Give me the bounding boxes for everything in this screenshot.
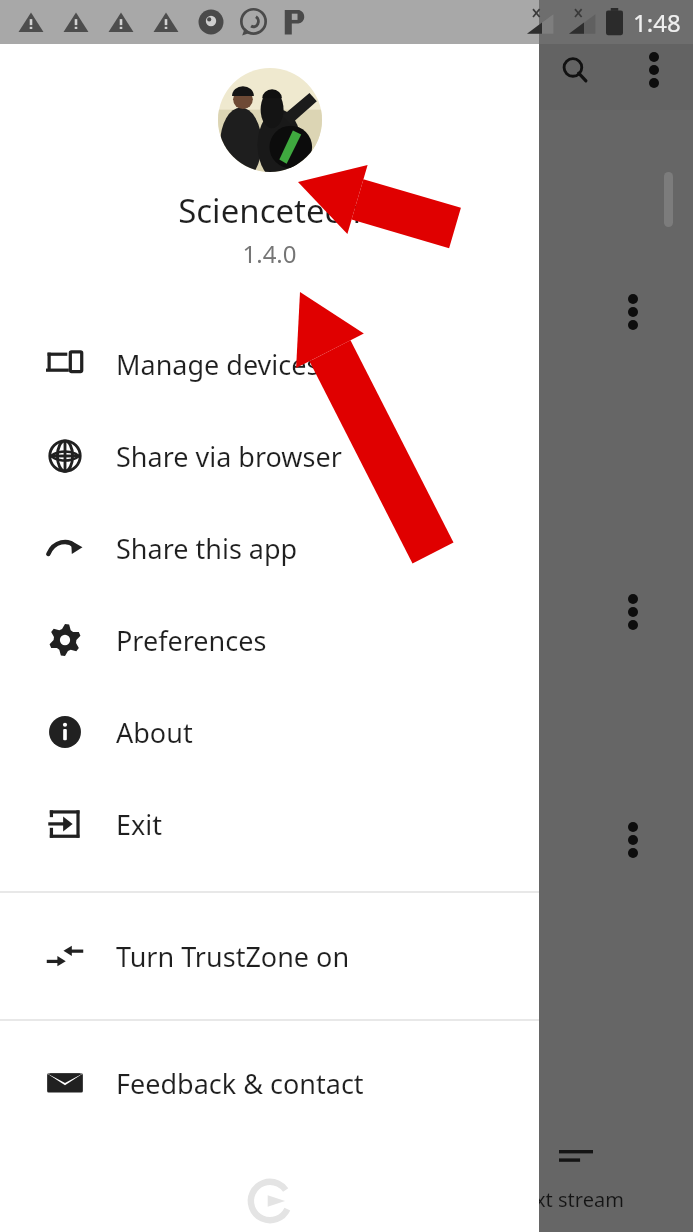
staticText: Sciencetech [178,188,361,233]
staticText: Preferences [116,622,267,659]
button[interactable]: More options [611,290,655,334]
staticText: Exit [116,806,163,843]
staticText: Manage devices [116,346,320,383]
button[interactable]: Manage devices [0,318,539,410]
button[interactable]: About [0,686,539,778]
staticText: Share this app [116,530,298,567]
button[interactable]: Exit [0,778,539,870]
staticText: Share via browser [116,438,342,475]
button[interactable]: More options [611,590,655,634]
button[interactable]: More options [611,818,655,862]
button[interactable]: Preferences [0,594,539,686]
staticText: 1:48 [633,6,681,39]
button[interactable]: Share this app [0,502,539,594]
staticText: 1.4.0 [242,237,297,270]
button[interactable]: More options [632,48,676,92]
button[interactable]: Search [553,48,597,92]
staticText: About [116,714,193,751]
staticText: Turn TrustZone on [116,938,350,975]
button[interactable]: Turn TrustZone on [0,893,539,1019]
button[interactable]: Share via browser [0,410,539,502]
button[interactable]: Feedback & contact [0,1021,539,1145]
button[interactable]: Profile photo [218,68,322,172]
staticText: Feedback & contact [116,1065,364,1102]
staticText: xt stream [535,1186,624,1213]
